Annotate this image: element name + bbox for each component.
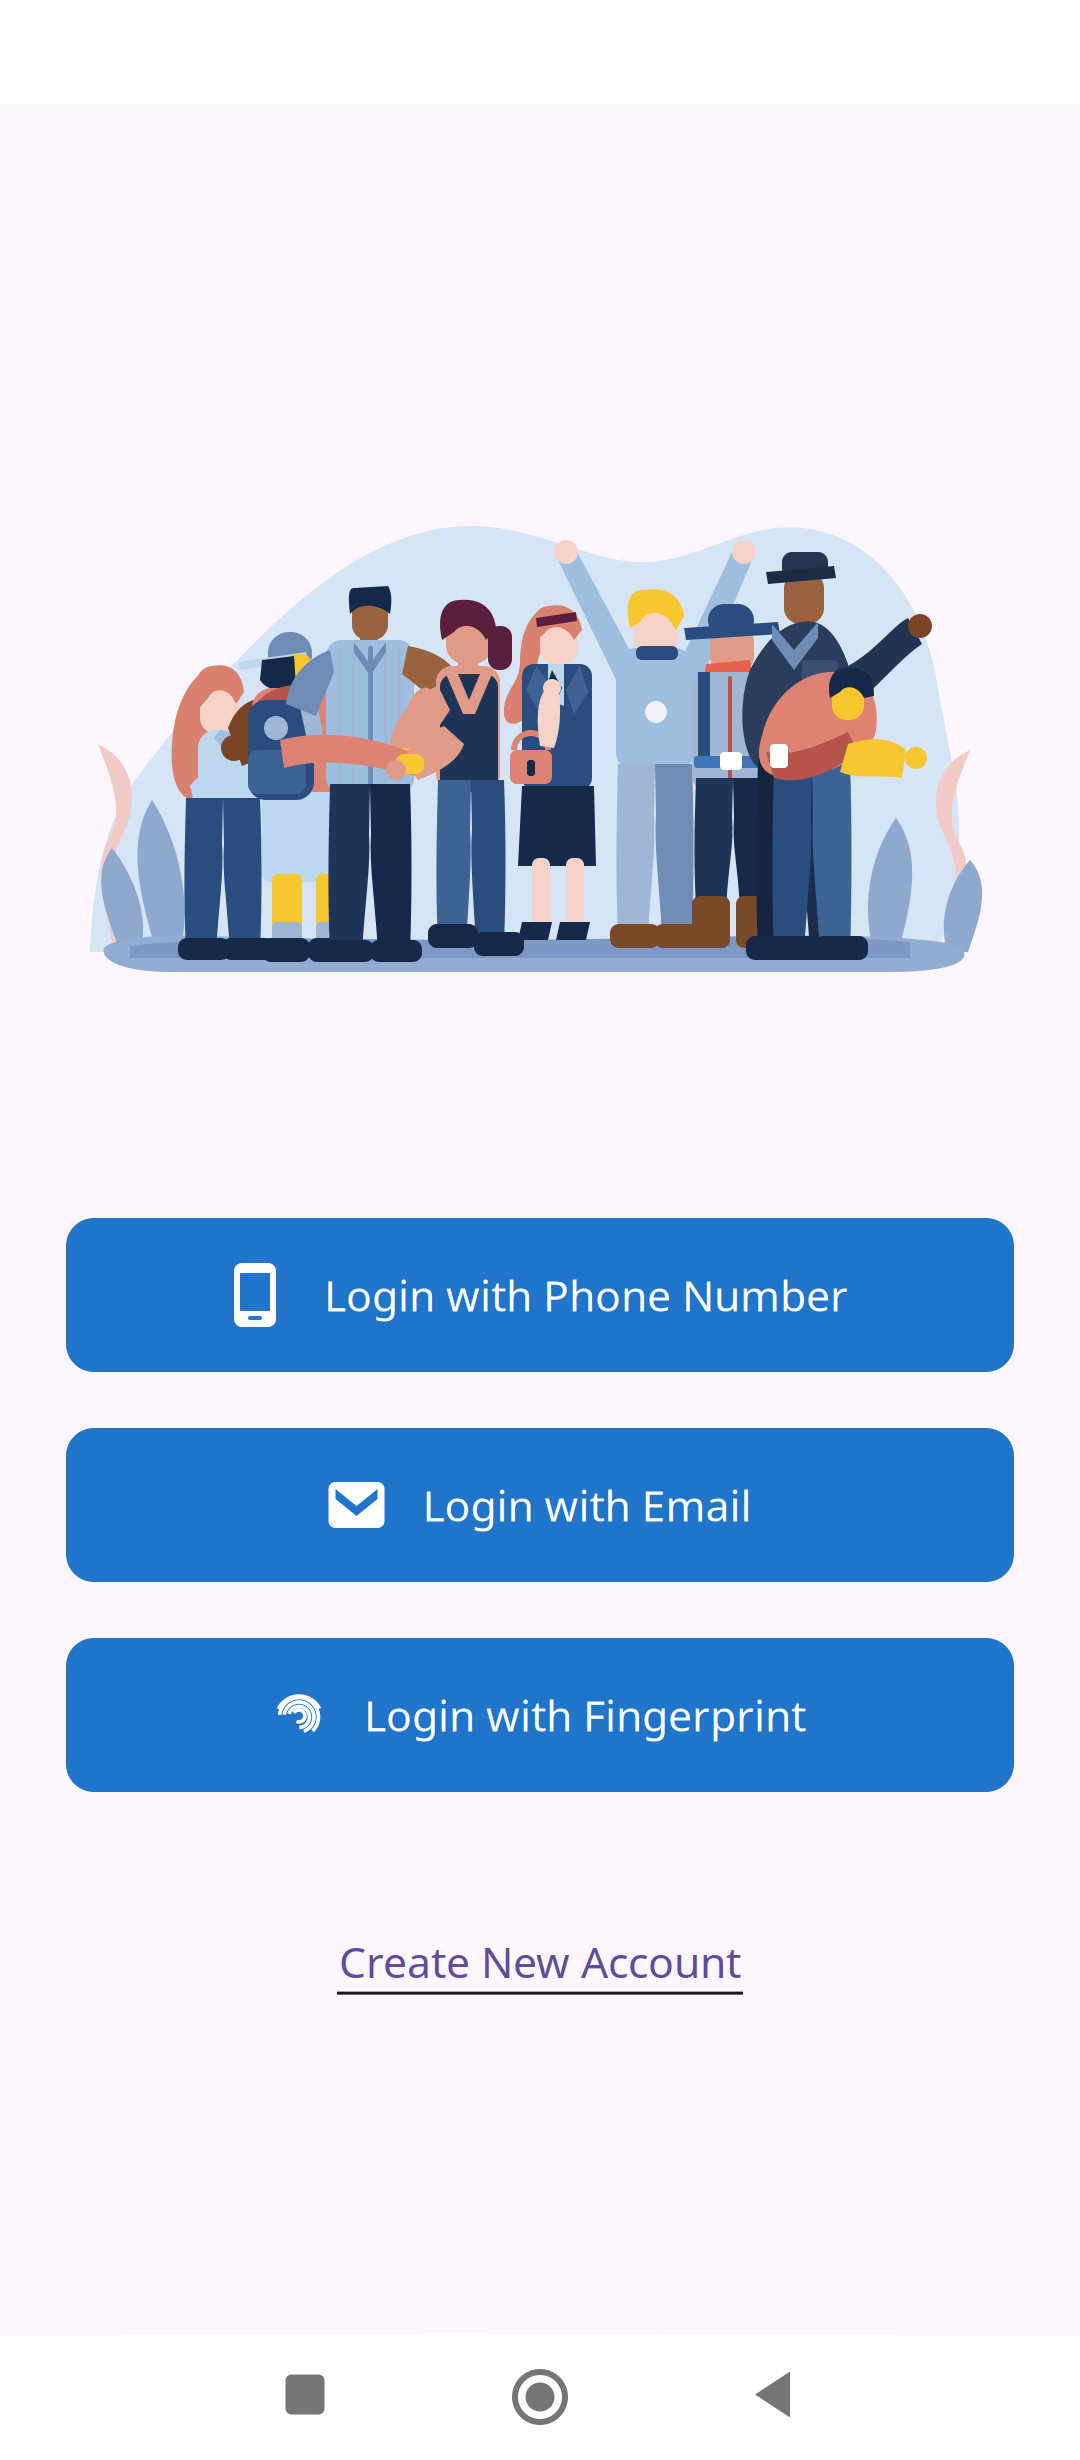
staticText: Login with Fingerprint bbox=[364, 1687, 806, 1743]
staticText: Login with Email bbox=[422, 1477, 751, 1533]
button[interactable]: Home bbox=[420, 2334, 660, 2459]
button[interactable]: Recent apps bbox=[125, 2334, 485, 2459]
button[interactable]: Login with Fingerprint bbox=[66, 1638, 1014, 1792]
staticText: Login with Phone Number bbox=[324, 1267, 848, 1323]
button[interactable]: Login with Email bbox=[66, 1428, 1014, 1582]
button[interactable]: Back bbox=[655, 2334, 895, 2459]
button[interactable]: Create New Account bbox=[337, 1933, 743, 1995]
button[interactable]: Login with Phone Number bbox=[66, 1218, 1014, 1372]
staticText: Create New Account bbox=[339, 1933, 741, 1990]
